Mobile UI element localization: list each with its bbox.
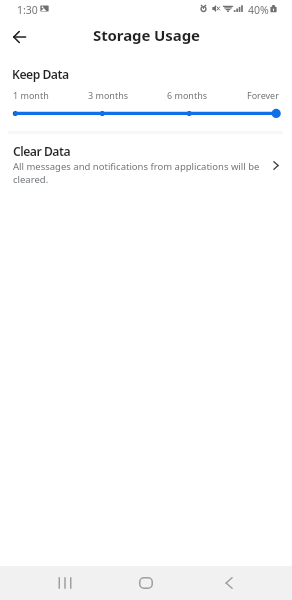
button[interactable]: Clear Data [0, 134, 292, 196]
button[interactable]: Keep data for: Forever [0, 106, 292, 121]
staticText: 1 month [13, 89, 49, 101]
button[interactable]: Navigate up [5, 23, 33, 51]
button[interactable]: Home [118, 566, 173, 600]
staticText: Clear Data [13, 143, 71, 160]
staticText: 1:30 [17, 3, 38, 17]
staticText: 40% [248, 3, 269, 17]
staticText: Keep Data [12, 66, 69, 83]
staticText: Storage Usage [93, 25, 200, 45]
staticText: 3 months [88, 89, 129, 101]
button[interactable]: Back [201, 566, 256, 600]
button[interactable]: Recent apps [37, 566, 92, 600]
staticText: All messages and notifications from appl… [13, 160, 261, 186]
staticText: 6 months [167, 89, 208, 101]
staticText: Forever [247, 89, 279, 101]
